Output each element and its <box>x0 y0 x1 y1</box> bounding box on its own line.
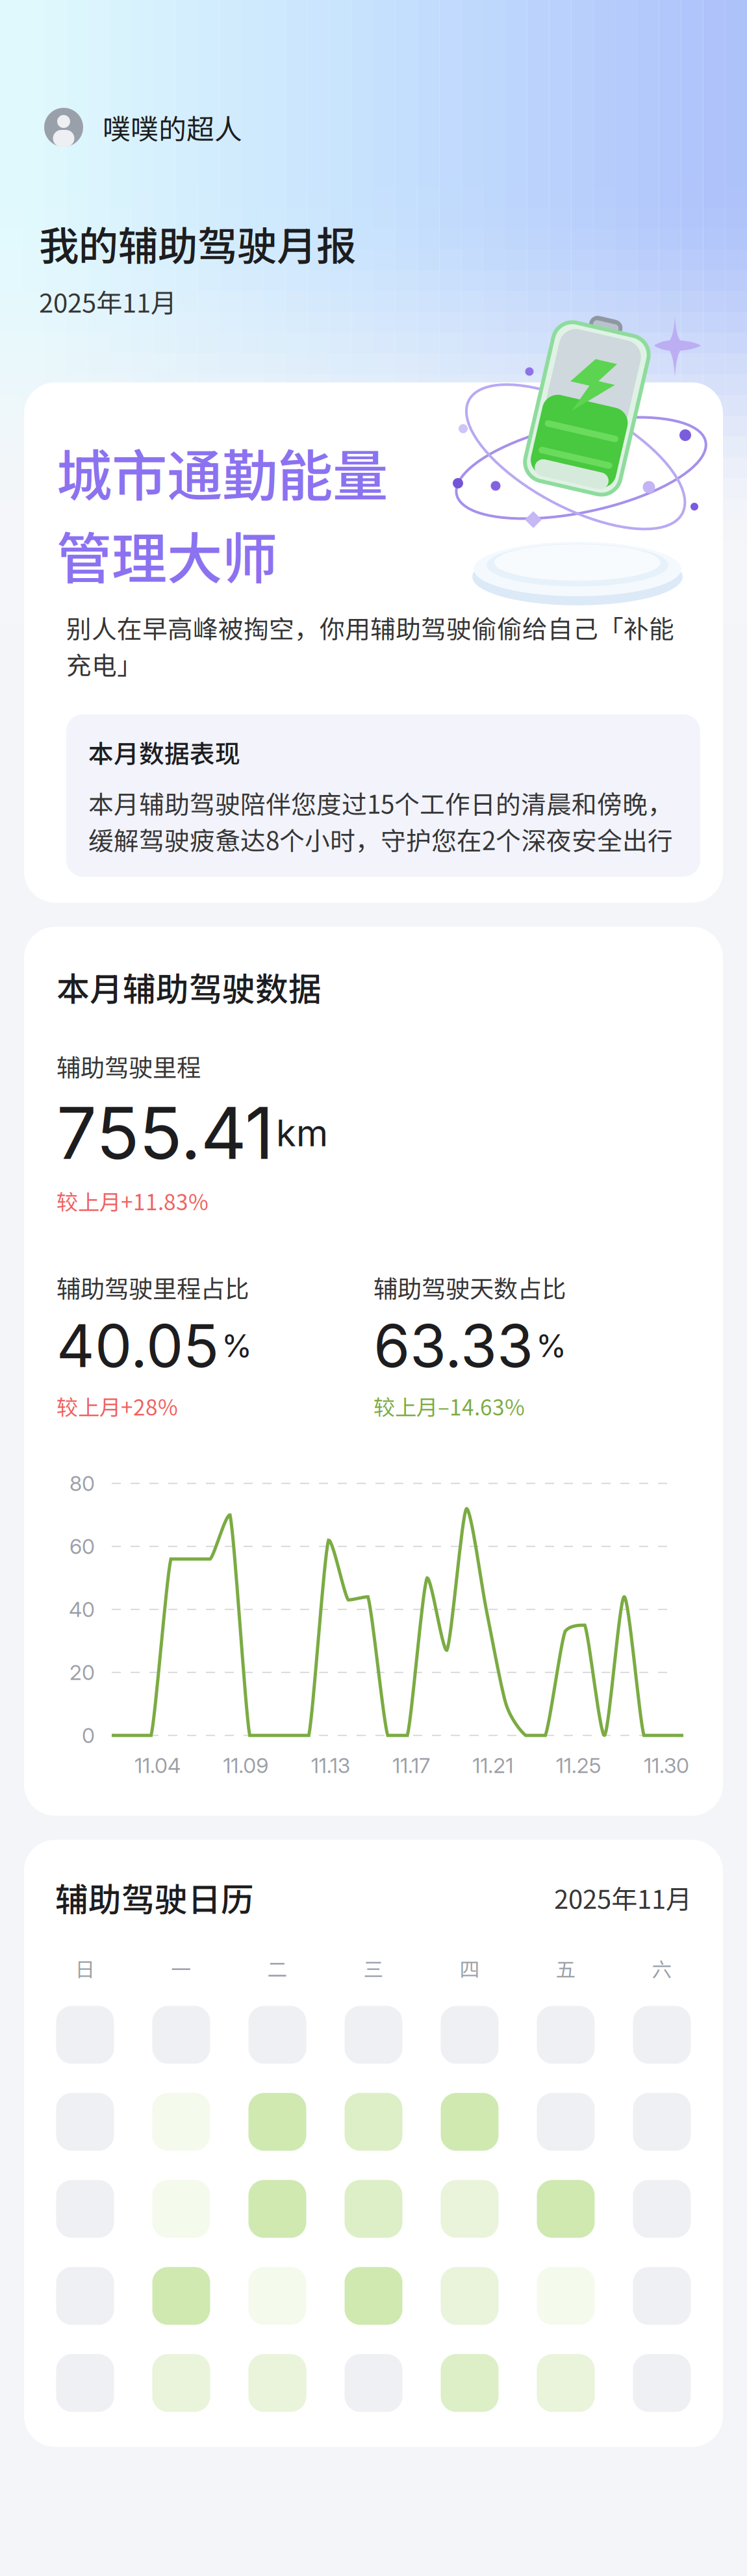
staticText: % <box>536 1327 566 1365</box>
staticText: 11.17 <box>392 1753 430 1778</box>
staticText: 别人在早高峰被掏空，你用辅助驾驶偷偷给自己「补能充电」 <box>66 609 674 682</box>
staticText: km <box>276 1111 328 1155</box>
staticText: 管理大师 <box>57 515 277 595</box>
staticText: 11.30 <box>644 1753 689 1778</box>
staticText: 63.33 <box>373 1310 533 1381</box>
staticText: 11.25 <box>556 1753 601 1778</box>
staticText: 40.05 <box>57 1310 219 1381</box>
staticText: 我的辅助驾驶月报 <box>39 214 356 272</box>
staticText: 二 <box>267 1954 287 1983</box>
staticText: 较上月+28% <box>57 1390 178 1422</box>
staticText: 本月辅助驾驶陪伴您度过15个工作日的清晨和傍晚，缓解驾驶疲惫达8个小时，守护您在… <box>88 784 673 857</box>
staticText: 60 <box>70 1534 95 1559</box>
staticText: 日 <box>75 1954 95 1983</box>
staticText: 辅助驾驶日历 <box>55 1874 254 1921</box>
staticText: 辅助驾驶里程占比 <box>57 1270 249 1305</box>
staticText: 20 <box>70 1660 95 1685</box>
staticText: 11.04 <box>134 1753 181 1778</box>
staticText: 一 <box>171 1954 191 1983</box>
button[interactable]: 噗噗的超人 <box>44 108 703 147</box>
staticText: 2025年11月 <box>39 282 177 320</box>
staticText: 较上月+11.83% <box>57 1185 209 1216</box>
staticText: 噗噗的超人 <box>103 107 242 147</box>
staticText: 11.13 <box>311 1753 350 1778</box>
staticText: 三 <box>363 1954 384 1983</box>
staticText: 2025年11月 <box>554 1879 692 1916</box>
staticText: 城市通勤能量 <box>57 432 388 512</box>
staticText: 五 <box>556 1954 576 1983</box>
staticText: 本月辅助驾驶数据 <box>57 963 322 1011</box>
staticText: % <box>222 1327 252 1365</box>
staticText: 0 <box>82 1723 95 1748</box>
staticText: 较上月–14.63% <box>373 1390 525 1422</box>
staticText: 40 <box>69 1597 95 1622</box>
staticText: 11.21 <box>472 1753 513 1778</box>
staticText: 六 <box>652 1954 672 1983</box>
staticText: 辅助驾驶里程 <box>57 1048 201 1084</box>
staticText: 辅助驾驶天数占比 <box>373 1270 566 1305</box>
staticText: 四 <box>460 1954 480 1983</box>
staticText: 本月数据表现 <box>88 734 240 770</box>
staticText: 80 <box>70 1471 95 1496</box>
staticText: 755.41 <box>57 1090 273 1176</box>
staticText: 11.09 <box>223 1753 268 1778</box>
